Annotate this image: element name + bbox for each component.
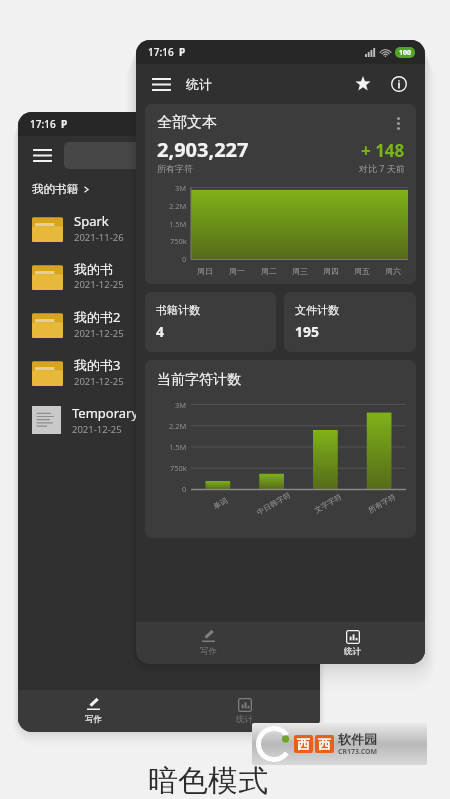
staticText: 西 — [297, 736, 310, 752]
staticText: 统计 — [186, 76, 212, 92]
staticText: 软件园 — [338, 731, 377, 747]
staticText: 2021-12-25 — [74, 327, 124, 340]
staticText: 所有字符 — [157, 163, 193, 174]
button[interactable]: Info — [383, 68, 415, 100]
staticText: 2021-11-26 — [74, 231, 124, 244]
staticText: 2.2M — [169, 421, 187, 431]
button[interactable]: 书籍计数 — [145, 292, 276, 352]
staticText: 统计 — [236, 714, 253, 725]
staticText: 2,903,227 — [157, 136, 249, 163]
staticText: 2.2M — [169, 201, 187, 211]
staticText: 当前字符计数 — [157, 371, 241, 389]
staticText: 1.5M — [169, 219, 187, 229]
staticText: 0 — [182, 484, 187, 494]
button[interactable]: 全部文本 — [145, 104, 416, 284]
staticText: 周五 — [354, 266, 370, 276]
staticText: 100 — [399, 48, 412, 58]
staticText: 3M — [175, 400, 187, 410]
staticText: 文字字符 — [313, 492, 343, 515]
staticText: 4 — [156, 322, 165, 341]
staticText: 周二 — [261, 266, 277, 276]
staticText: 2021-12-25 — [74, 375, 124, 388]
staticText: 17:16 — [30, 117, 56, 131]
staticText: 0 — [182, 254, 187, 264]
staticText: 1.5M — [169, 442, 187, 452]
staticText: 周六 — [385, 266, 401, 276]
staticText: Temporary — [72, 404, 139, 422]
staticText: 17:16 — [148, 45, 174, 59]
staticText: 周日 — [197, 266, 213, 276]
staticText: 750k — [170, 236, 187, 246]
staticText: 我的书 — [74, 261, 113, 277]
button[interactable]: 写作 — [18, 690, 169, 732]
button[interactable]: 我的书 — [18, 252, 320, 300]
staticText: 2021-12-25 — [72, 423, 122, 436]
button[interactable]: Favorite — [347, 68, 379, 100]
button[interactable]: 我的书2 — [18, 300, 320, 348]
button[interactable]: 我的书3 — [18, 348, 320, 396]
staticText: 2021-12-25 — [74, 278, 124, 291]
staticText: 我的书2 — [74, 308, 121, 326]
staticText: 周四 — [323, 266, 339, 276]
staticText: 全文 — [176, 149, 198, 163]
staticText: 写作 — [85, 714, 102, 725]
staticText: Spark — [74, 212, 109, 230]
staticText: 单词 — [212, 496, 229, 511]
staticText: 所有字符 — [367, 492, 397, 515]
staticText: 750k — [170, 463, 187, 473]
button[interactable]: 文件计数 — [284, 292, 416, 352]
staticText: 写作 — [200, 646, 217, 657]
button[interactable]: 统计 — [169, 690, 320, 732]
button[interactable]: 统计 — [280, 622, 425, 664]
staticText: 对比 7 天前 — [359, 162, 405, 174]
staticText: CR173.COM — [338, 747, 378, 757]
button[interactable]: More options — [388, 113, 408, 133]
button[interactable]: 全文 — [64, 142, 310, 169]
staticText: 周三 — [292, 266, 308, 276]
staticText: 西 — [318, 736, 331, 752]
staticText: P — [179, 45, 186, 59]
staticText: 文件计数 — [295, 303, 339, 317]
staticText: 195 — [295, 322, 320, 341]
staticText: 统计 — [344, 646, 361, 657]
staticText: 全部文本 — [157, 113, 217, 132]
button[interactable]: Menu — [28, 141, 56, 169]
staticText: 3M — [175, 183, 187, 193]
button[interactable]: 当前字符计数 — [145, 360, 416, 538]
staticText: 我的书籍 — [32, 182, 78, 196]
staticText: 周一 — [229, 266, 245, 276]
staticText: P — [61, 117, 68, 131]
staticText: + 148 — [361, 139, 405, 162]
button[interactable]: 写作 — [136, 622, 280, 664]
button[interactable]: Menu — [146, 69, 176, 99]
button[interactable]: Temporary — [18, 396, 320, 444]
staticText: 暗色模式 — [148, 762, 268, 799]
staticText: 中日韩字符 — [255, 490, 293, 517]
button[interactable]: Spark — [18, 204, 320, 252]
staticText: 书籍计数 — [156, 303, 200, 317]
staticText: 我的书3 — [74, 356, 121, 374]
